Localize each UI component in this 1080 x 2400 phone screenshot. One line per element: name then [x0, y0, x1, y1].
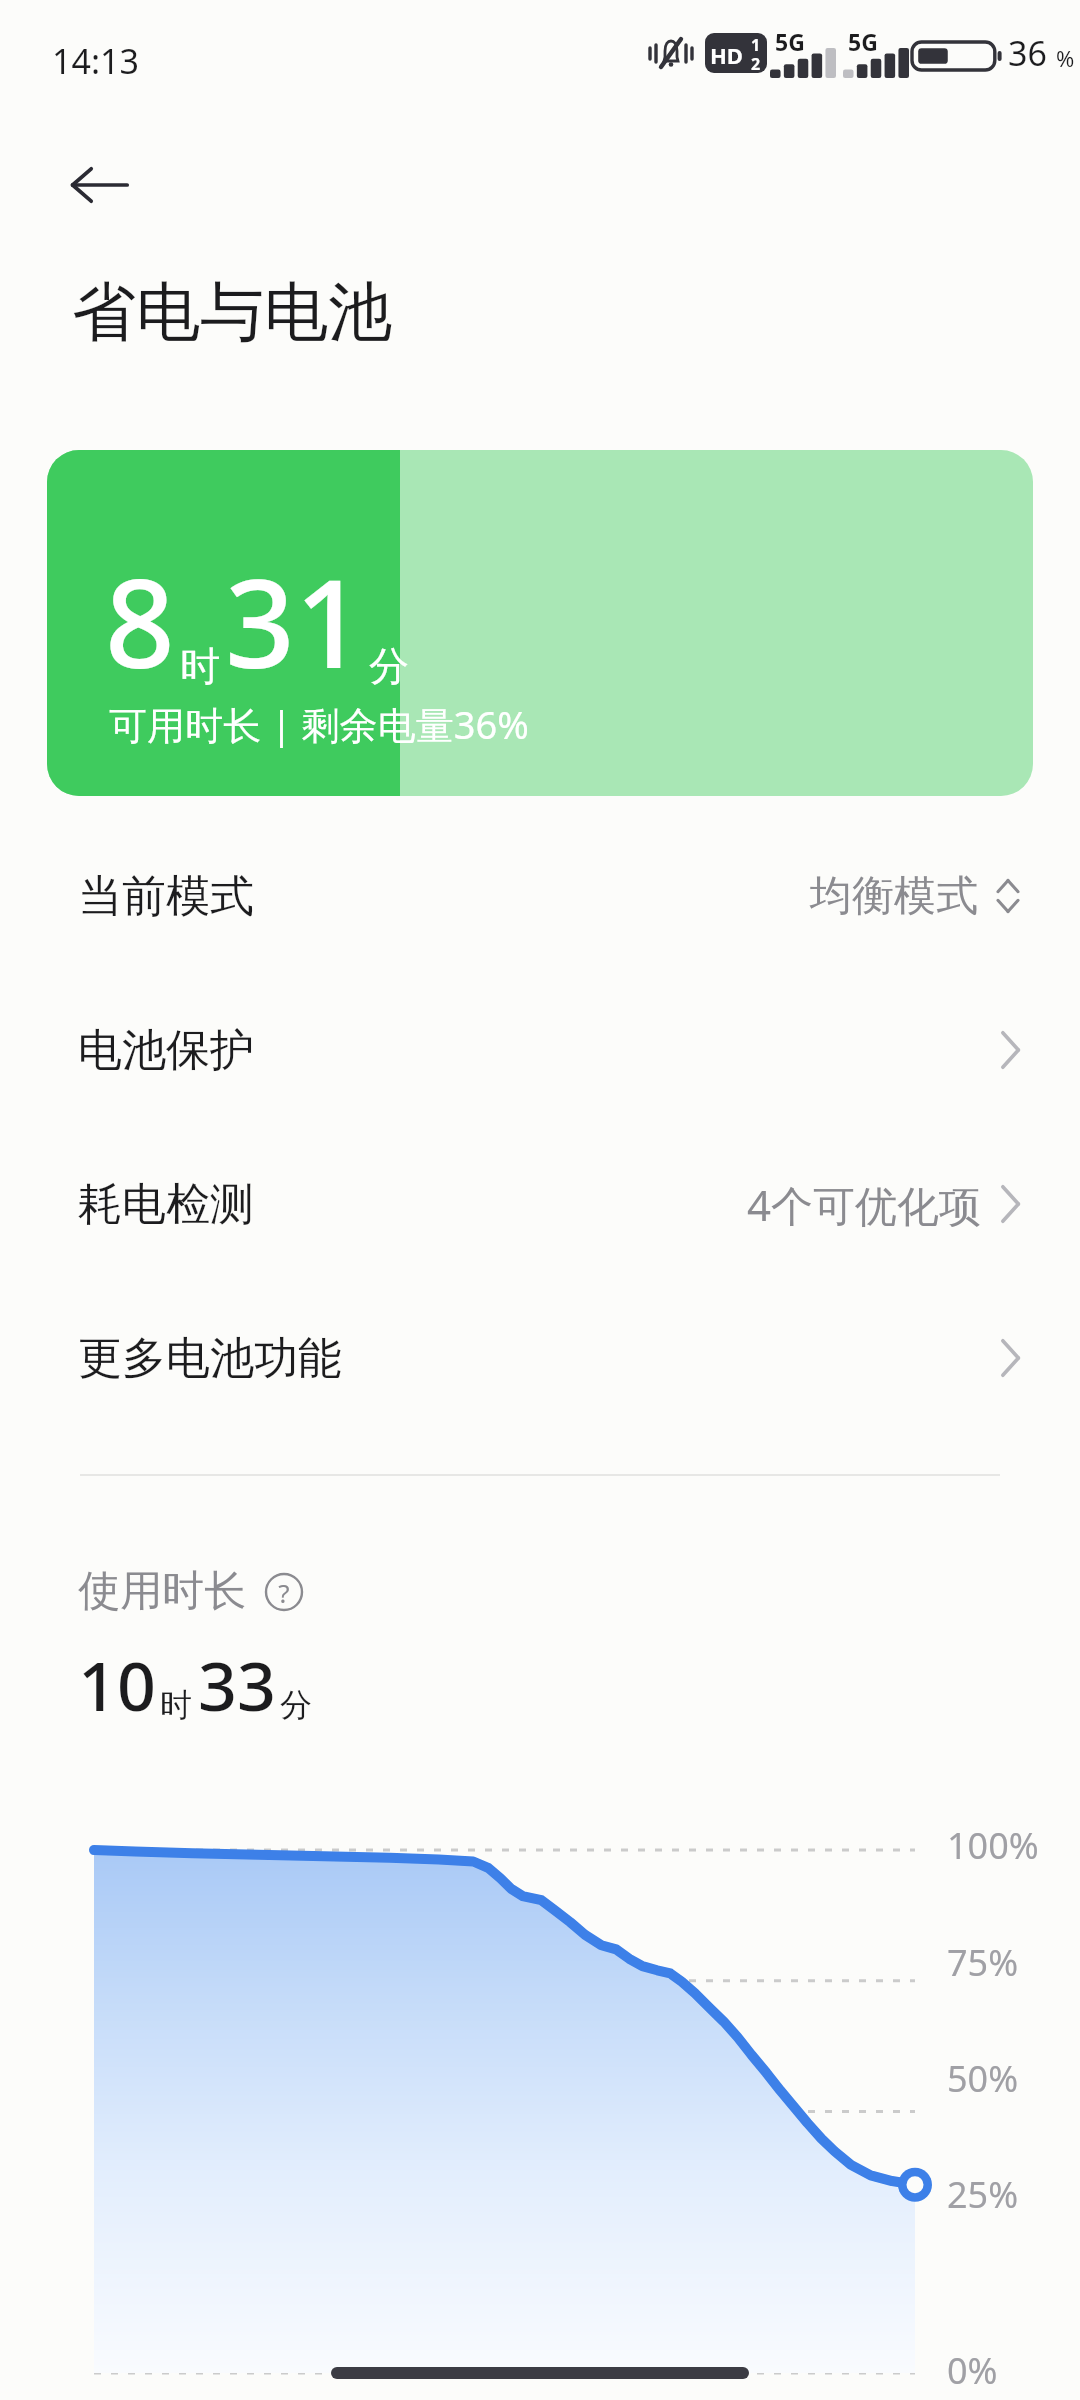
staticText: %: [1056, 43, 1075, 73]
button[interactable]: Back: [46, 132, 152, 238]
button[interactable]: 当前模式: [0, 838, 1080, 954]
staticText: 5G: [848, 26, 878, 57]
staticText: 均衡模式: [810, 870, 978, 923]
staticText: 10: [78, 1638, 156, 1731]
staticText: 5G: [775, 26, 805, 57]
staticText: 25%: [947, 2170, 1019, 2219]
staticText: 100%: [947, 1821, 1039, 1870]
staticText: 14:13: [52, 38, 139, 84]
staticText: HD: [710, 40, 743, 70]
staticText: 2: [751, 53, 761, 73]
staticText: 分: [369, 641, 409, 691]
staticText: 电池保护: [78, 1023, 254, 1078]
staticText: 时: [160, 1685, 192, 1725]
staticText: 4个可优化项: [747, 1176, 982, 1233]
button[interactable]: 耗电检测: [0, 1146, 1080, 1262]
staticText: 可用时长 | 剩余电量36%: [109, 698, 529, 750]
staticText: 省电与电池: [72, 272, 392, 353]
button[interactable]: 电池保护: [0, 992, 1080, 1108]
staticText: 33: [198, 1638, 276, 1731]
staticText: 8: [105, 538, 175, 704]
button[interactable]: 更多电池功能: [0, 1300, 1080, 1416]
staticText: 50%: [947, 2054, 1019, 2103]
staticText: ?: [278, 1575, 290, 1610]
button[interactable]: Usage duration help: [264, 1572, 304, 1612]
staticText: 分: [280, 1685, 312, 1725]
staticText: 31: [225, 538, 365, 704]
staticText: 0%: [947, 2346, 998, 2395]
staticText: 1: [751, 34, 761, 56]
staticText: 更多电池功能: [78, 1331, 342, 1386]
button[interactable]: 8: [47, 450, 1033, 796]
staticText: 36: [1008, 30, 1047, 76]
staticText: 75%: [947, 1938, 1019, 1987]
staticText: 时: [180, 641, 220, 691]
staticText: 当前模式: [78, 869, 254, 924]
staticText: 耗电检测: [78, 1177, 254, 1232]
staticText: 使用时长: [78, 1565, 246, 1618]
